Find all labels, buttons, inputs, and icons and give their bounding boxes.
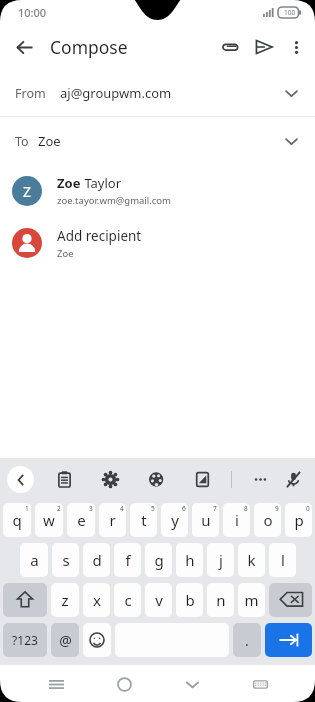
staticText: 100	[284, 8, 296, 17]
staticText: 8	[244, 504, 248, 513]
button[interactable]: x	[83, 583, 110, 617]
button[interactable]: p	[285, 503, 312, 537]
button[interactable]: Backspace	[269, 583, 312, 617]
staticText: 0	[306, 504, 310, 513]
button[interactable]: q	[3, 503, 31, 537]
staticText: h	[185, 550, 195, 570]
button[interactable]: Emoji	[83, 623, 111, 657]
button[interactable]: From	[0, 69, 315, 116]
button[interactable]: Back	[6, 29, 42, 65]
staticText: j	[219, 550, 223, 570]
button[interactable]: Hide keyboard	[176, 668, 208, 700]
button[interactable]: ?123	[3, 623, 47, 657]
button[interactable]: Enter	[265, 623, 312, 657]
other: Expand	[277, 127, 305, 155]
button[interactable]: More	[248, 467, 272, 491]
button[interactable]: Sticker	[190, 467, 214, 491]
staticText: x	[93, 590, 101, 610]
button[interactable]: z	[51, 583, 79, 617]
staticText: Zoe	[38, 132, 61, 150]
staticText: Zoe	[57, 174, 81, 192]
button[interactable]: Switch keyboard	[244, 668, 276, 700]
button[interactable]: @	[51, 623, 79, 657]
staticText: 3	[89, 504, 93, 513]
button[interactable]: l	[269, 543, 296, 577]
button[interactable]: Z	[0, 164, 315, 217]
staticText: k	[247, 550, 256, 570]
button[interactable]: Shift	[3, 583, 47, 617]
staticText: 9	[275, 504, 279, 513]
staticText: Compose	[50, 35, 128, 59]
button[interactable]: m	[238, 583, 265, 617]
button[interactable]: o	[254, 503, 281, 537]
button[interactable]: s	[52, 543, 79, 577]
button[interactable]: Clipboard	[52, 467, 76, 491]
button[interactable]: n	[207, 583, 234, 617]
button[interactable]: w	[35, 503, 63, 537]
staticText: 1	[25, 504, 29, 513]
staticText: 5	[151, 504, 155, 513]
staticText: aj@groupwm.com	[60, 84, 172, 102]
button[interactable]: Attach	[213, 30, 247, 64]
staticText: i	[235, 510, 239, 530]
button[interactable]: t	[130, 503, 157, 537]
staticText: c	[124, 590, 132, 610]
staticText: Zoe	[57, 247, 74, 260]
button[interactable]: g	[145, 543, 172, 577]
button[interactable]: More options	[281, 30, 311, 64]
button[interactable]: f	[114, 543, 141, 577]
staticText: t	[141, 510, 147, 530]
button[interactable]: Theme	[144, 467, 168, 491]
button[interactable]: h	[176, 543, 203, 577]
button[interactable]: Back	[7, 466, 34, 493]
button[interactable]: Recents	[40, 668, 72, 700]
staticText: From	[15, 85, 46, 102]
staticText: 2	[57, 504, 61, 513]
button[interactable]: i	[223, 503, 250, 537]
staticText: Z	[23, 182, 32, 201]
staticText: m	[244, 590, 259, 610]
other: Expand	[277, 79, 305, 107]
staticText: ?123	[12, 632, 38, 648]
staticText: n	[216, 590, 226, 610]
button[interactable]: Settings	[98, 467, 122, 491]
button[interactable]: v	[145, 583, 172, 617]
button[interactable]: r	[99, 503, 126, 537]
staticText: d	[92, 550, 102, 570]
button[interactable]: k	[238, 543, 265, 577]
staticText: p	[294, 510, 304, 530]
staticText: zoe.tayor.wm@gmail.com	[57, 194, 172, 207]
staticText: s	[62, 550, 70, 570]
staticText: w	[43, 510, 55, 530]
staticText: f	[125, 550, 131, 570]
staticText: Add recipient	[57, 227, 142, 245]
button[interactable]: a	[20, 543, 48, 577]
button[interactable]: To	[0, 117, 315, 164]
staticText: r	[109, 510, 116, 530]
button[interactable]: .	[233, 623, 261, 657]
staticText: @	[59, 631, 72, 650]
staticText: z	[61, 590, 69, 610]
button[interactable]: e	[67, 503, 95, 537]
staticText: q	[12, 510, 22, 530]
button[interactable]: Home	[108, 668, 140, 700]
button[interactable]: Voice input off	[281, 467, 305, 491]
staticText: Taylor	[81, 174, 122, 192]
staticText: 4	[120, 504, 124, 513]
button[interactable]: c	[114, 583, 141, 617]
staticText: 10:00	[18, 5, 47, 20]
button[interactable]: Add recipient	[0, 217, 315, 269]
button[interactable]: d	[83, 543, 110, 577]
staticText: v	[155, 590, 163, 610]
staticText: l	[281, 550, 285, 570]
button[interactable]: u	[192, 503, 219, 537]
staticText: 6	[182, 504, 186, 513]
button[interactable]: y	[161, 503, 188, 537]
staticText: .	[245, 631, 249, 650]
staticText: u	[201, 510, 211, 530]
staticText: b	[185, 590, 195, 610]
button[interactable]: b	[176, 583, 203, 617]
button[interactable]: j	[207, 543, 234, 577]
button[interactable]: Send	[247, 30, 281, 64]
